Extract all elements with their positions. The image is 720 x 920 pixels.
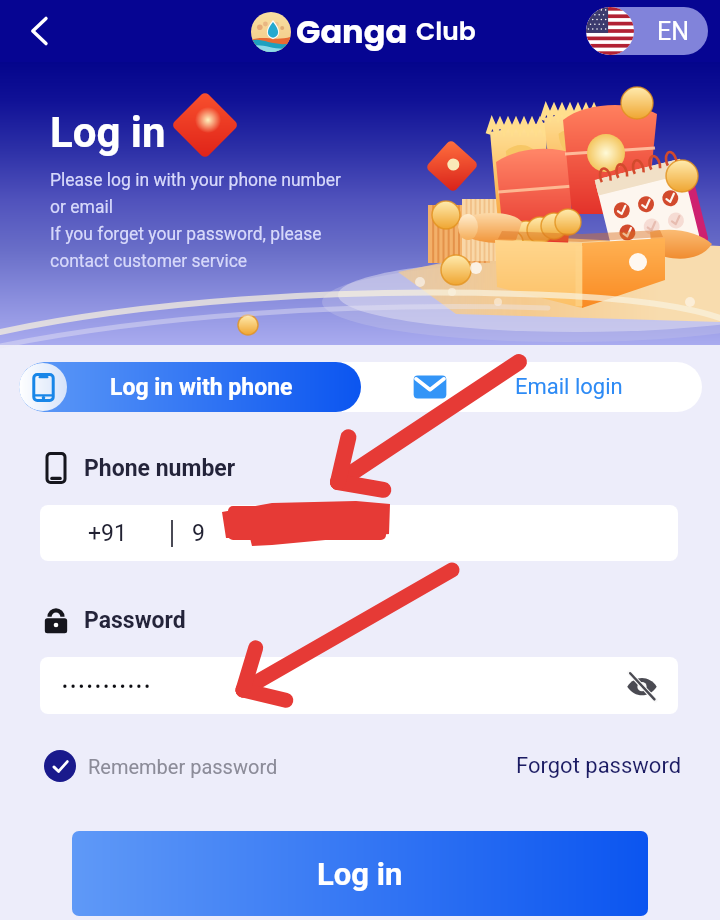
button[interactable]: ••••••••••• [40, 657, 678, 714]
staticText: Remember password [88, 755, 278, 778]
staticText: +91 [88, 520, 127, 547]
button[interactable]: Show password [622, 666, 662, 706]
staticText: Log in [50, 108, 166, 157]
staticText: Phone number [84, 455, 236, 482]
staticText: Password [84, 607, 186, 634]
staticText: Forgot password [516, 753, 682, 779]
staticText: Log in [317, 856, 403, 892]
staticText: Please log in with your phone number or … [50, 170, 341, 272]
button[interactable]: Log in with phone [19, 362, 361, 412]
staticText: ••••••••••• [62, 676, 153, 696]
button[interactable]: Log in [72, 831, 648, 916]
staticText: Email login [515, 374, 623, 400]
button[interactable]: EN [586, 7, 708, 55]
staticText: Log in with phone [110, 374, 293, 401]
button[interactable]: Email login [361, 362, 702, 412]
staticText: EN [657, 17, 690, 46]
staticText: 9 [192, 520, 205, 547]
staticText: Ganga [296, 9, 408, 54]
staticText: Club [416, 14, 476, 49]
button[interactable]: Remember password [44, 750, 278, 782]
button[interactable]: Back [16, 7, 64, 55]
button[interactable]: +91 [40, 505, 678, 561]
button[interactable]: Forgot password [516, 753, 682, 779]
